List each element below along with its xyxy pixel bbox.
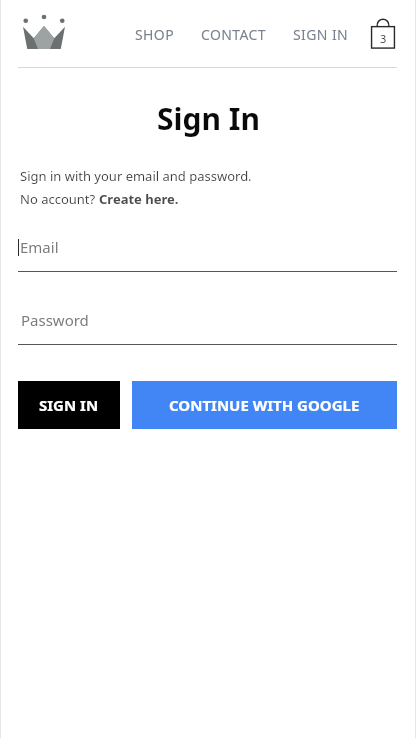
button[interactable]: CONTACT: [199, 19, 269, 50]
staticText: SIGN IN: [293, 25, 349, 44]
staticText: CONTINUE WITH GOOGLE: [169, 395, 360, 415]
staticText: Sign In: [157, 98, 260, 139]
staticText: SHOP: [135, 25, 175, 44]
button[interactable]: Shopping bag, 3 items: [369, 17, 397, 51]
staticText: No account?: [20, 190, 99, 208]
button[interactable]: Home: [18, 11, 70, 57]
button[interactable]: Create here.: [99, 190, 179, 208]
button[interactable]: Password: [18, 310, 397, 345]
staticText: 3: [380, 31, 387, 46]
staticText: Password: [21, 310, 89, 330]
button[interactable]: SIGN IN: [18, 381, 120, 429]
staticText: CONTACT: [201, 25, 267, 44]
button[interactable]: Email: [18, 237, 397, 272]
button[interactable]: SHOP: [133, 19, 177, 50]
button[interactable]: CONTINUE WITH GOOGLE: [132, 381, 397, 429]
staticText: Email: [20, 237, 59, 257]
staticText: Create here.: [99, 190, 179, 208]
staticText: SIGN IN: [39, 395, 99, 415]
button[interactable]: SIGN IN: [291, 19, 351, 50]
staticText: Sign in with your email and password.: [20, 167, 252, 185]
